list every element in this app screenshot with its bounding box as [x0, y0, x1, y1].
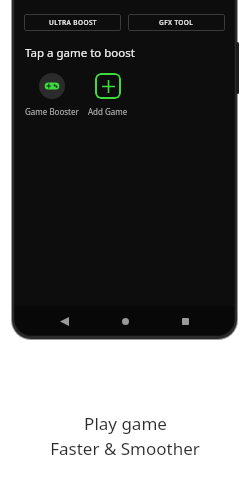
- button[interactable]: ULTRA BOOST: [24, 14, 121, 31]
- button[interactable]: Home: [113, 309, 137, 333]
- button[interactable]: Add Game: [88, 73, 128, 117]
- button[interactable]: Game Booster: [25, 73, 79, 117]
- button[interactable]: Back: [52, 309, 76, 333]
- staticText: GFX TOOL: [159, 18, 194, 27]
- button[interactable]: Recent apps: [173, 309, 197, 333]
- staticText: Game Booster: [25, 106, 79, 117]
- staticText: Play game: [84, 412, 167, 435]
- staticText: Faster & Smoother: [50, 437, 200, 460]
- staticText: Tap a game to boost: [25, 45, 135, 61]
- button[interactable]: GFX TOOL: [128, 14, 225, 31]
- staticText: ULTRA BOOST: [49, 18, 97, 27]
- staticText: Add Game: [88, 106, 128, 117]
